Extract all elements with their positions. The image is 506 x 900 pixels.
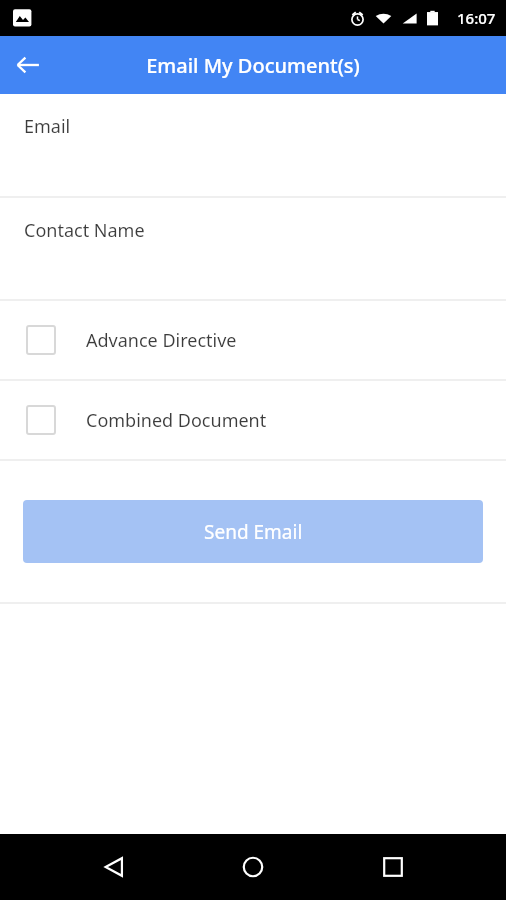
staticText: Contact Name <box>24 218 145 243</box>
staticText: 16:07 <box>457 8 496 28</box>
staticText: Advance Directive <box>86 328 237 353</box>
button[interactable]: Advance Directive <box>0 301 506 379</box>
button[interactable]: Email <box>0 94 506 196</box>
button[interactable]: Recent apps <box>367 841 419 893</box>
button[interactable]: Send Email <box>23 500 483 563</box>
button[interactable]: Back <box>88 841 140 893</box>
staticText: Send Email <box>204 519 303 545</box>
staticText: Combined Document <box>86 408 267 433</box>
button[interactable]: Home <box>227 841 279 893</box>
staticText: Email <box>24 114 71 139</box>
staticText: Email My Document(s) <box>146 52 360 79</box>
button[interactable]: Back <box>0 37 56 93</box>
button[interactable]: Combined Document <box>0 381 506 459</box>
button[interactable]: Contact Name <box>0 198 506 299</box>
